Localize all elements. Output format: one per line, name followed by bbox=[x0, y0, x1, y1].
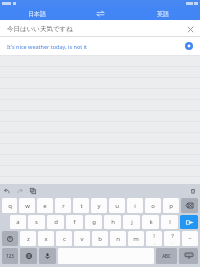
button[interactable]: c bbox=[56, 231, 72, 246]
staticText: b bbox=[98, 235, 102, 243]
staticText: u bbox=[115, 202, 119, 210]
button[interactable]: del bbox=[181, 198, 198, 213]
button[interactable]: b bbox=[92, 231, 108, 246]
staticText: n bbox=[116, 235, 120, 243]
staticText: g bbox=[92, 218, 96, 226]
button[interactable]: e bbox=[37, 198, 53, 213]
staticText: z bbox=[27, 235, 30, 243]
button[interactable]: hand bbox=[189, 187, 197, 195]
staticText: w bbox=[25, 202, 30, 210]
staticText: r bbox=[62, 202, 65, 210]
button[interactable]: y bbox=[91, 198, 107, 213]
button[interactable]: enter bbox=[180, 215, 198, 229]
staticText: p bbox=[169, 202, 173, 210]
staticText: h bbox=[111, 218, 115, 226]
staticText: c bbox=[63, 235, 66, 243]
staticText: ! bbox=[153, 232, 155, 240]
button[interactable]: r bbox=[55, 198, 71, 213]
staticText: l bbox=[169, 218, 171, 226]
button[interactable]: copy bbox=[29, 187, 37, 195]
button[interactable]: a bbox=[10, 215, 26, 229]
staticText: d bbox=[54, 218, 58, 226]
staticText: e bbox=[43, 202, 47, 210]
button[interactable]: undo bbox=[3, 187, 11, 195]
staticText: o bbox=[151, 202, 155, 210]
staticText: It's nice weather today, is not it bbox=[7, 43, 88, 50]
staticText: a bbox=[16, 218, 20, 226]
staticText: m bbox=[133, 235, 139, 243]
staticText: 123 bbox=[6, 253, 14, 259]
button[interactable]: ? bbox=[164, 231, 180, 246]
button[interactable]: i bbox=[127, 198, 143, 213]
button[interactable]: kbdown bbox=[179, 248, 198, 264]
button[interactable]: p bbox=[163, 198, 179, 213]
staticText: j bbox=[131, 218, 133, 226]
button[interactable]: ABC bbox=[156, 248, 177, 264]
button[interactable]: v bbox=[74, 231, 90, 246]
button[interactable]: n bbox=[110, 231, 126, 246]
button[interactable]: − bbox=[182, 231, 198, 246]
staticText: ABC bbox=[162, 253, 171, 259]
button[interactable]: o bbox=[145, 198, 161, 213]
button[interactable]: h bbox=[104, 215, 121, 229]
button[interactable]: m bbox=[128, 231, 144, 246]
button[interactable]: l bbox=[161, 215, 178, 229]
button[interactable]: globe bbox=[20, 248, 37, 264]
button[interactable]: 123 bbox=[2, 248, 18, 264]
button[interactable]: t bbox=[73, 198, 89, 213]
button[interactable]: shift bbox=[2, 231, 18, 246]
staticText: 日本語 bbox=[28, 10, 46, 18]
staticText: f bbox=[73, 218, 76, 226]
staticText: , bbox=[154, 240, 155, 245]
button[interactable]: 日本語 bbox=[0, 7, 74, 20]
button[interactable]: j bbox=[123, 215, 140, 229]
button[interactable]: redo bbox=[16, 187, 24, 195]
staticText: k bbox=[149, 218, 153, 226]
staticText: 英語 bbox=[157, 10, 169, 18]
button[interactable]: Swap languages bbox=[74, 7, 126, 20]
staticText: x bbox=[44, 235, 48, 243]
button[interactable]: x bbox=[38, 231, 54, 246]
staticText: v bbox=[80, 235, 84, 243]
button[interactable]: s bbox=[28, 215, 45, 229]
button[interactable]: ! bbox=[146, 231, 162, 246]
button[interactable]: Translate bbox=[183, 40, 195, 52]
button[interactable]: u bbox=[109, 198, 125, 213]
staticText: t bbox=[80, 202, 83, 210]
button[interactable]: k bbox=[142, 215, 159, 229]
button[interactable]: f bbox=[66, 215, 83, 229]
staticText: s bbox=[35, 218, 38, 226]
button[interactable]: q bbox=[2, 198, 17, 213]
staticText: i bbox=[134, 202, 136, 210]
button[interactable]: d bbox=[47, 215, 64, 229]
staticText: q bbox=[8, 202, 12, 210]
button[interactable]: Clear bbox=[184, 23, 196, 35]
button[interactable]: mic bbox=[39, 248, 56, 264]
staticText: . bbox=[172, 240, 173, 245]
button[interactable]: w bbox=[19, 198, 35, 213]
staticText: − bbox=[188, 235, 192, 243]
staticText: 今日はいい天気ですね bbox=[7, 25, 73, 33]
button[interactable]: z bbox=[20, 231, 36, 246]
button[interactable]: g bbox=[85, 215, 102, 229]
button[interactable]: 英語 bbox=[126, 7, 200, 20]
staticText: y bbox=[97, 202, 101, 210]
staticText: ? bbox=[171, 232, 174, 240]
